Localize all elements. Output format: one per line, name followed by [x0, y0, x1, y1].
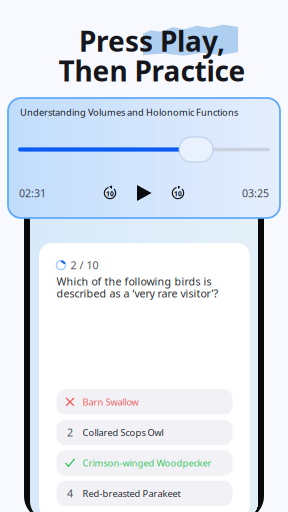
staticText: Crimson-winged Woodpecker — [82, 457, 211, 469]
staticText: 02:31 — [19, 186, 46, 200]
staticText: 2 / 10 — [70, 258, 98, 272]
staticText: Red-breasted Parakeet — [82, 487, 180, 500]
staticText: described as a ‘very rare visitor’? — [56, 286, 218, 300]
staticText: 2 — [67, 425, 73, 439]
staticText: 03:25 — [242, 186, 269, 200]
staticText: 10 — [174, 189, 182, 198]
staticText: Collared Scops Owl — [82, 426, 163, 439]
staticText: Understanding Volumes and Holonomic Func… — [20, 106, 238, 118]
button[interactable]: Back 10 seconds — [103, 186, 116, 199]
button[interactable]: Crimson-winged Woodpecker — [56, 450, 232, 476]
button[interactable]: 4 — [56, 481, 232, 506]
button[interactable]: 2 — [56, 420, 232, 445]
button[interactable]: Barn Swallow — [56, 389, 232, 415]
button[interactable]: Forward 10 seconds — [171, 186, 184, 199]
staticText: Play, — [160, 22, 225, 60]
staticText: Then Practice — [58, 52, 245, 89]
staticText: Barn Swallow — [82, 396, 138, 408]
staticText: 10 — [106, 189, 114, 198]
staticText: 4 — [67, 486, 73, 500]
staticText: Which of the following birds is — [56, 274, 211, 288]
staticText: Press — [79, 22, 153, 60]
button[interactable]: Play — [136, 185, 151, 201]
